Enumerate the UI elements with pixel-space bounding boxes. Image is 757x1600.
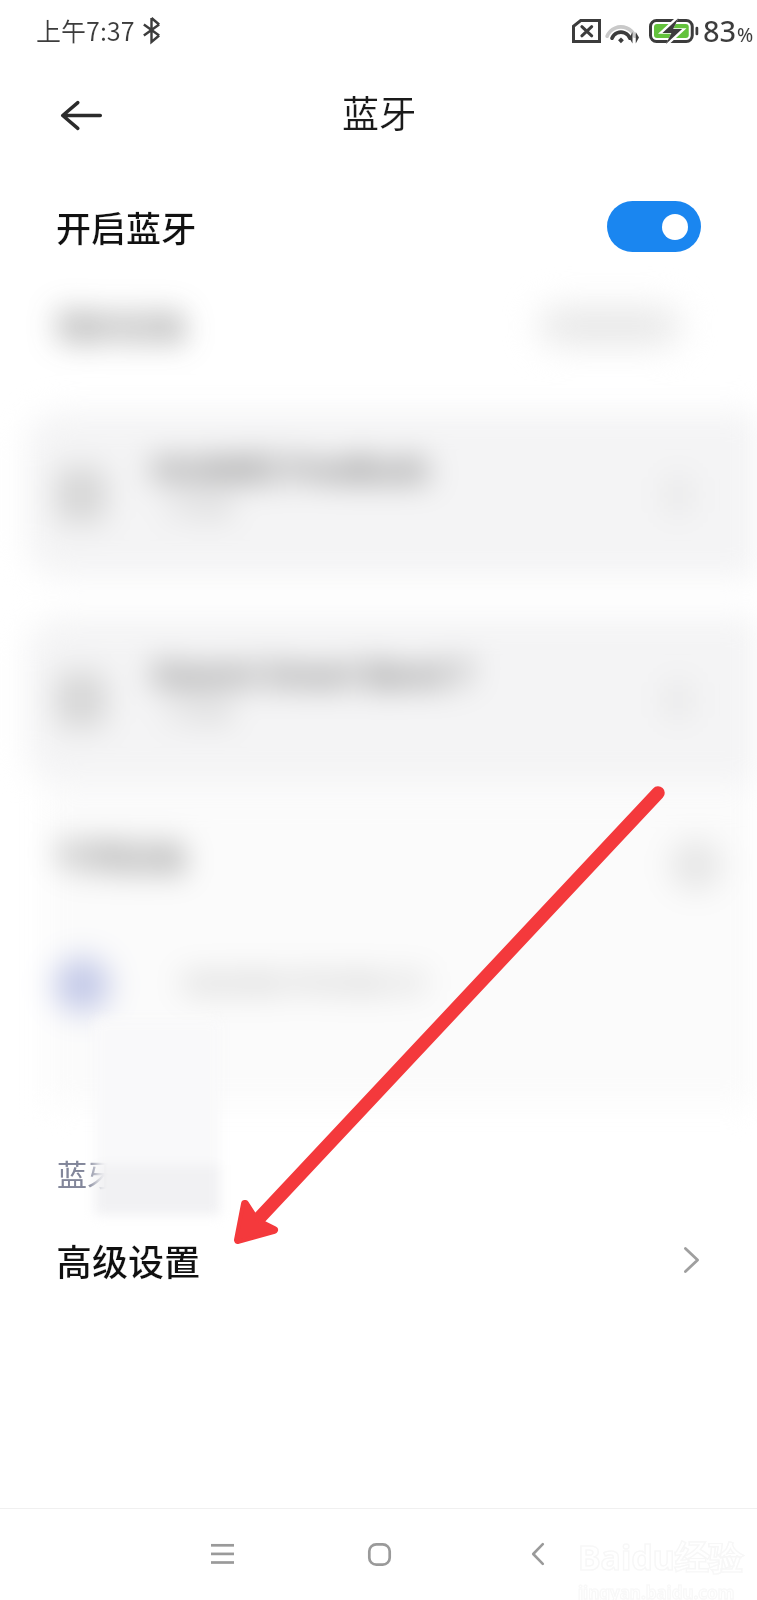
- staticText: 已连接: [166, 493, 232, 521]
- staticText: Xiaomi Smart Band 7: [152, 652, 472, 696]
- button[interactable]: 开启蓝牙: [0, 170, 757, 282]
- staticText: HUAWEI FreeBuds: [152, 447, 430, 491]
- staticText: 高级设置: [56, 1234, 201, 1286]
- staticText: 我的设备: [56, 306, 188, 348]
- staticText: 已连接: [166, 698, 232, 726]
- staticText: 可用设备: [56, 837, 188, 879]
- staticText: 蓝牙: [342, 85, 416, 139]
- button[interactable]: Back: [498, 1508, 578, 1600]
- button[interactable]: Home: [339, 1508, 419, 1600]
- staticText: 83: [703, 11, 737, 50]
- button[interactable]: Recent apps: [182, 1508, 262, 1600]
- staticText: 蓝牙: [57, 1151, 117, 1194]
- button[interactable]: 高级设置: [0, 1204, 757, 1316]
- staticText: 开启蓝牙: [56, 201, 197, 252]
- button[interactable]: Bluetooth switch: [607, 201, 701, 252]
- staticText: %: [737, 22, 754, 48]
- staticText: 上午7:37: [36, 12, 135, 48]
- button[interactable]: Back: [42, 76, 120, 154]
